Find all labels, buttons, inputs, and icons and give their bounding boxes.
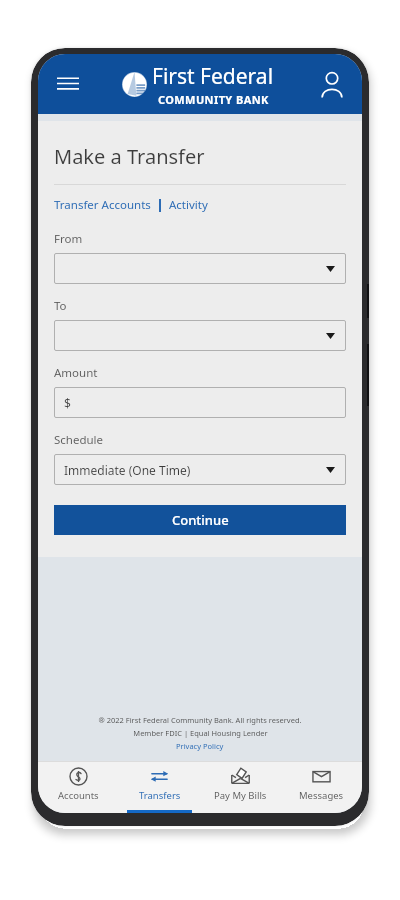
staticText: Transfers (139, 789, 181, 802)
staticText: Continue (172, 511, 229, 529)
staticText: Pay My Bills (214, 789, 267, 802)
staticText: To (54, 298, 67, 314)
staticText: Activity (169, 197, 208, 213)
button[interactable]: Continue (54, 505, 346, 535)
button[interactable]: Transfer Accounts (54, 197, 151, 213)
staticText: From (54, 231, 83, 247)
button[interactable]: Menu (48, 64, 88, 104)
button[interactable]: Messages (281, 761, 362, 813)
staticText: First Federal (152, 62, 274, 91)
staticText: Make a Transfer (54, 143, 205, 170)
button[interactable]: Activity (169, 197, 208, 213)
button[interactable]: Privacy Policy (176, 741, 224, 751)
button[interactable]: Accounts (38, 761, 119, 813)
staticText: Messages (299, 789, 344, 802)
staticText: COMMUNITY BANK (158, 92, 269, 107)
staticText: Accounts (58, 789, 99, 802)
staticText: $ (64, 395, 71, 411)
staticText: Privacy Policy (176, 741, 224, 751)
button[interactable]: Transfers (119, 761, 200, 813)
staticText: ® 2022 First Federal Community Bank. All… (98, 715, 302, 725)
button[interactable]: Immediate (One Time) (54, 454, 346, 485)
button[interactable]: Profile (312, 64, 352, 104)
button[interactable]: Select account (54, 320, 346, 351)
staticText: Transfer Accounts (54, 197, 151, 213)
staticText: Schedule (54, 432, 104, 448)
staticText: Member FDIC | Equal Housing Lender (133, 728, 268, 738)
button[interactable]: Pay My Bills (200, 761, 281, 813)
button[interactable]: Select account (54, 253, 346, 284)
button[interactable]: $ (54, 387, 346, 418)
staticText: Amount (54, 365, 98, 381)
staticText: Immediate (One Time) (64, 462, 191, 478)
